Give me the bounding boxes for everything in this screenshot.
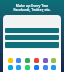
- button[interactable]: [5, 28, 59, 33]
- button[interactable]: App: [8, 58, 13, 63]
- staticText: Make up Every Two Facebook, Twitter, etc…: [6, 3, 58, 12]
- button[interactable]: App: [25, 65, 30, 70]
- button[interactable]: [5, 42, 59, 48]
- button[interactable]: App: [34, 58, 39, 63]
- button[interactable]: App: [43, 58, 48, 63]
- button[interactable]: App: [51, 65, 56, 70]
- button[interactable]: App: [34, 65, 39, 70]
- button[interactable]: App: [16, 58, 21, 63]
- button[interactable]: App: [43, 65, 48, 70]
- button[interactable]: [5, 35, 59, 40]
- button[interactable]: App: [8, 65, 13, 70]
- button[interactable]: App: [16, 65, 21, 70]
- button[interactable]: App: [51, 58, 56, 63]
- button[interactable]: App: [25, 58, 30, 63]
